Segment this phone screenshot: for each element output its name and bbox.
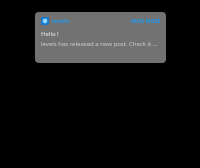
staticText: Hello !	[41, 30, 59, 38]
staticText: levels has released a new post. Check it…	[41, 40, 161, 48]
other: levels app icon	[41, 17, 49, 25]
button[interactable]: READ MORE	[131, 18, 161, 25]
button[interactable]: levels app icon	[35, 12, 166, 63]
staticText: levels	[52, 17, 70, 25]
staticText: READ MORE	[131, 18, 161, 25]
